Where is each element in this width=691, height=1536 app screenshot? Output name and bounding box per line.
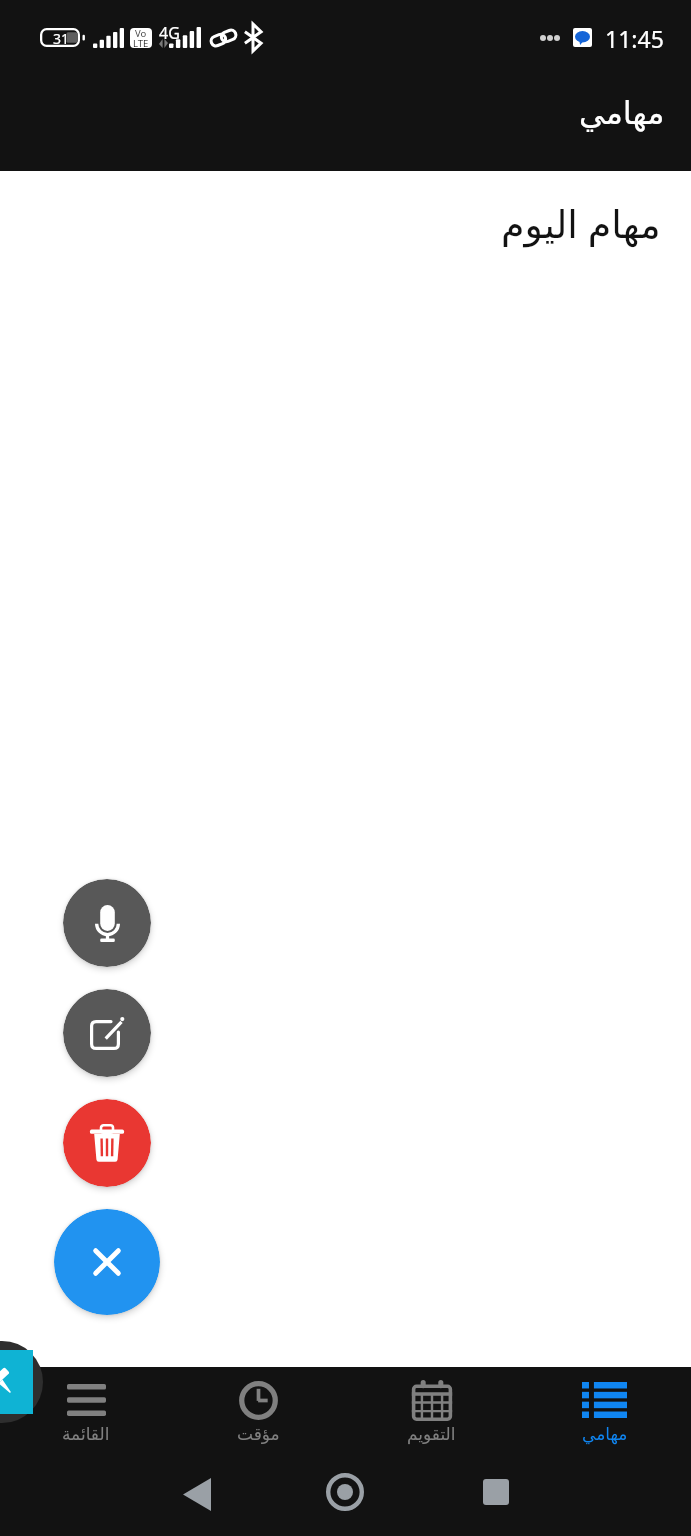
- staticText: القائمة: [62, 1424, 110, 1444]
- button[interactable]: التقويم: [345, 1367, 518, 1447]
- button[interactable]: مهامي: [518, 1367, 691, 1447]
- button[interactable]: Home: [271, 1462, 421, 1522]
- staticText: 4G: [159, 22, 180, 44]
- staticText: مهام اليوم: [501, 197, 661, 249]
- staticText: مهامي: [582, 1424, 628, 1444]
- staticText: 31: [53, 29, 70, 48]
- staticText: مؤقت: [237, 1424, 280, 1444]
- button[interactable]: Back: [121, 1462, 271, 1522]
- button[interactable]: New task: [63, 989, 151, 1077]
- button[interactable]: القائمة: [0, 1367, 172, 1447]
- button[interactable]: Close menu: [54, 1209, 160, 1315]
- staticText: التقويم: [407, 1424, 456, 1444]
- staticText: مهامي: [579, 94, 665, 131]
- button[interactable]: Delete: [63, 1099, 151, 1187]
- staticText: Vo: [135, 28, 147, 40]
- staticText: 11:45: [605, 23, 664, 54]
- button[interactable]: Recents: [421, 1462, 571, 1522]
- staticText: LTE: [133, 37, 149, 48]
- button[interactable]: مؤقت: [172, 1367, 345, 1447]
- button[interactable]: Pinned note shortcut: [0, 1350, 33, 1414]
- button[interactable]: Voice input: [63, 879, 151, 967]
